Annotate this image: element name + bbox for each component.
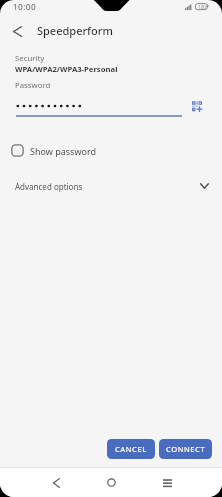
button[interactable]: Navigate up: [5, 19, 29, 43]
staticText: Speedperform: [37, 23, 113, 38]
staticText: CANCEL: [115, 444, 147, 454]
staticText: 100: [198, 4, 206, 10]
button[interactable]: Home: [97, 468, 125, 497]
staticText: Advanced options: [15, 181, 200, 192]
staticText: Show password: [30, 145, 96, 157]
button[interactable]: Show password: [11, 141, 96, 160]
button[interactable]: Back: [42, 468, 70, 497]
staticText: 10:00: [13, 1, 36, 12]
button[interactable]: CANCEL: [107, 439, 155, 459]
button[interactable]: Recent apps: [153, 468, 181, 497]
staticText: CONNECT: [166, 444, 206, 454]
staticText: Password: [15, 80, 51, 91]
button[interactable]: CONNECT: [159, 439, 212, 459]
staticText: Security: [15, 53, 45, 64]
staticText: WPA/WPA2/WPA3-Personal: [15, 64, 118, 74]
button[interactable]: Scan QR code: [185, 94, 209, 118]
button[interactable]: Advanced options: [15, 178, 209, 194]
